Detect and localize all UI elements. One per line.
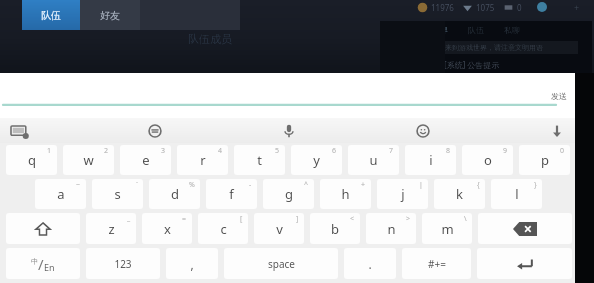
button[interactable]: 好友 (80, 0, 140, 30)
staticText: w (83, 151, 94, 169)
button[interactable]: j (377, 179, 428, 209)
staticText: 欢迎来到游戏世界，请注意文明用语 (431, 43, 543, 52)
staticText: 0 (560, 146, 565, 156)
button[interactable]: Enter (477, 248, 572, 279)
staticText: a (57, 185, 65, 203)
button[interactable]: h (320, 179, 371, 209)
staticText: v (276, 220, 283, 238)
button[interactable]: Hide keyboard (544, 118, 570, 143)
button[interactable]: r (177, 145, 228, 175)
button[interactable]: m (422, 213, 472, 244)
button[interactable]: e (120, 145, 171, 175)
staticText: 世界 (432, 25, 448, 35)
staticText: k (456, 185, 463, 203)
staticText: > (406, 214, 411, 224)
button[interactable]: . (344, 248, 396, 279)
button[interactable]: space (224, 248, 338, 279)
staticText: 123 (114, 257, 132, 271)
button[interactable]: l (491, 179, 542, 209)
button[interactable]: Shift (6, 213, 80, 244)
button[interactable]: i (405, 145, 456, 175)
staticText: 1 (47, 146, 52, 156)
staticText: 6 (332, 146, 337, 156)
staticText: _ (127, 214, 131, 224)
staticText: r (200, 151, 206, 169)
button[interactable]: c (198, 213, 248, 244)
button[interactable]: p (519, 145, 570, 175)
staticText: c (220, 220, 227, 238)
staticText: [系统] 公告提示 (444, 59, 500, 70)
staticText: / (38, 254, 44, 274)
staticText: space (268, 257, 295, 271)
button[interactable]: k (434, 179, 485, 209)
staticText: l (515, 185, 519, 203)
staticText: , (190, 256, 194, 272)
staticText: e (142, 151, 150, 169)
button[interactable]: s (92, 179, 143, 209)
staticText: g (285, 185, 293, 203)
staticText: 发送 (551, 91, 567, 101)
button[interactable]: q (6, 145, 57, 175)
staticText: 队伍 (468, 25, 484, 35)
button[interactable]: Voice input (276, 118, 302, 143)
button[interactable]: 队伍 (22, 0, 80, 30)
staticText: 4 (218, 146, 223, 156)
staticText: q (28, 151, 36, 169)
staticText: 7 (389, 146, 394, 156)
button[interactable]: f (206, 179, 257, 209)
staticText: ] (296, 214, 299, 224)
staticText: 中 (31, 257, 38, 266)
staticText: 11976 (431, 2, 454, 13)
button[interactable]: , (166, 248, 218, 279)
button[interactable]: a (35, 179, 86, 209)
staticText: } (534, 180, 537, 190)
staticText: 私聊 (504, 25, 520, 35)
staticText: #+= (428, 257, 446, 271)
staticText: f (229, 185, 234, 203)
staticText: n (387, 220, 396, 238)
staticText: j (401, 185, 405, 203)
button[interactable]: w (63, 145, 114, 175)
staticText: z (108, 220, 115, 238)
staticText: ` (136, 180, 138, 190)
staticText: u (369, 151, 378, 169)
staticText: 9 (503, 146, 508, 156)
staticText: + (574, 1, 580, 13)
staticText: b (331, 220, 339, 238)
button[interactable]: 123 (86, 248, 160, 279)
staticText: \ (464, 214, 467, 224)
staticText: + (361, 180, 366, 190)
button[interactable]: #+= (402, 248, 471, 279)
button[interactable]: 发送 (0, 73, 575, 118)
staticText: [ (240, 214, 243, 224)
button[interactable]: Keyboard settings (7, 118, 33, 143)
staticText: s (114, 185, 121, 203)
staticText: x (164, 220, 171, 238)
staticText: 8 (446, 146, 451, 156)
button[interactable]: o (462, 145, 513, 175)
staticText: d (171, 185, 179, 203)
button[interactable]: z (86, 213, 136, 244)
button[interactable]: Emoji (410, 118, 436, 143)
staticText: ~ (76, 180, 81, 190)
button[interactable]: b (310, 213, 360, 244)
button[interactable]: v (254, 213, 304, 244)
button[interactable]: Backspace (478, 213, 572, 244)
button[interactable]: x (142, 213, 192, 244)
staticText: 好友 (100, 9, 120, 22)
button[interactable]: t (234, 145, 285, 175)
staticText: 5 (275, 146, 280, 156)
staticText: p (541, 151, 549, 169)
staticText: % (189, 180, 195, 190)
button[interactable]: n (366, 213, 416, 244)
staticText: . (368, 256, 372, 272)
staticText: En (44, 261, 55, 273)
button[interactable]: Switch language (6, 248, 80, 279)
staticText: < (350, 214, 355, 224)
staticText: t (257, 151, 262, 169)
button[interactable]: Input language (142, 118, 168, 143)
button[interactable]: y (291, 145, 342, 175)
button[interactable]: g (263, 179, 314, 209)
button[interactable]: u (348, 145, 399, 175)
button[interactable]: d (149, 179, 200, 209)
